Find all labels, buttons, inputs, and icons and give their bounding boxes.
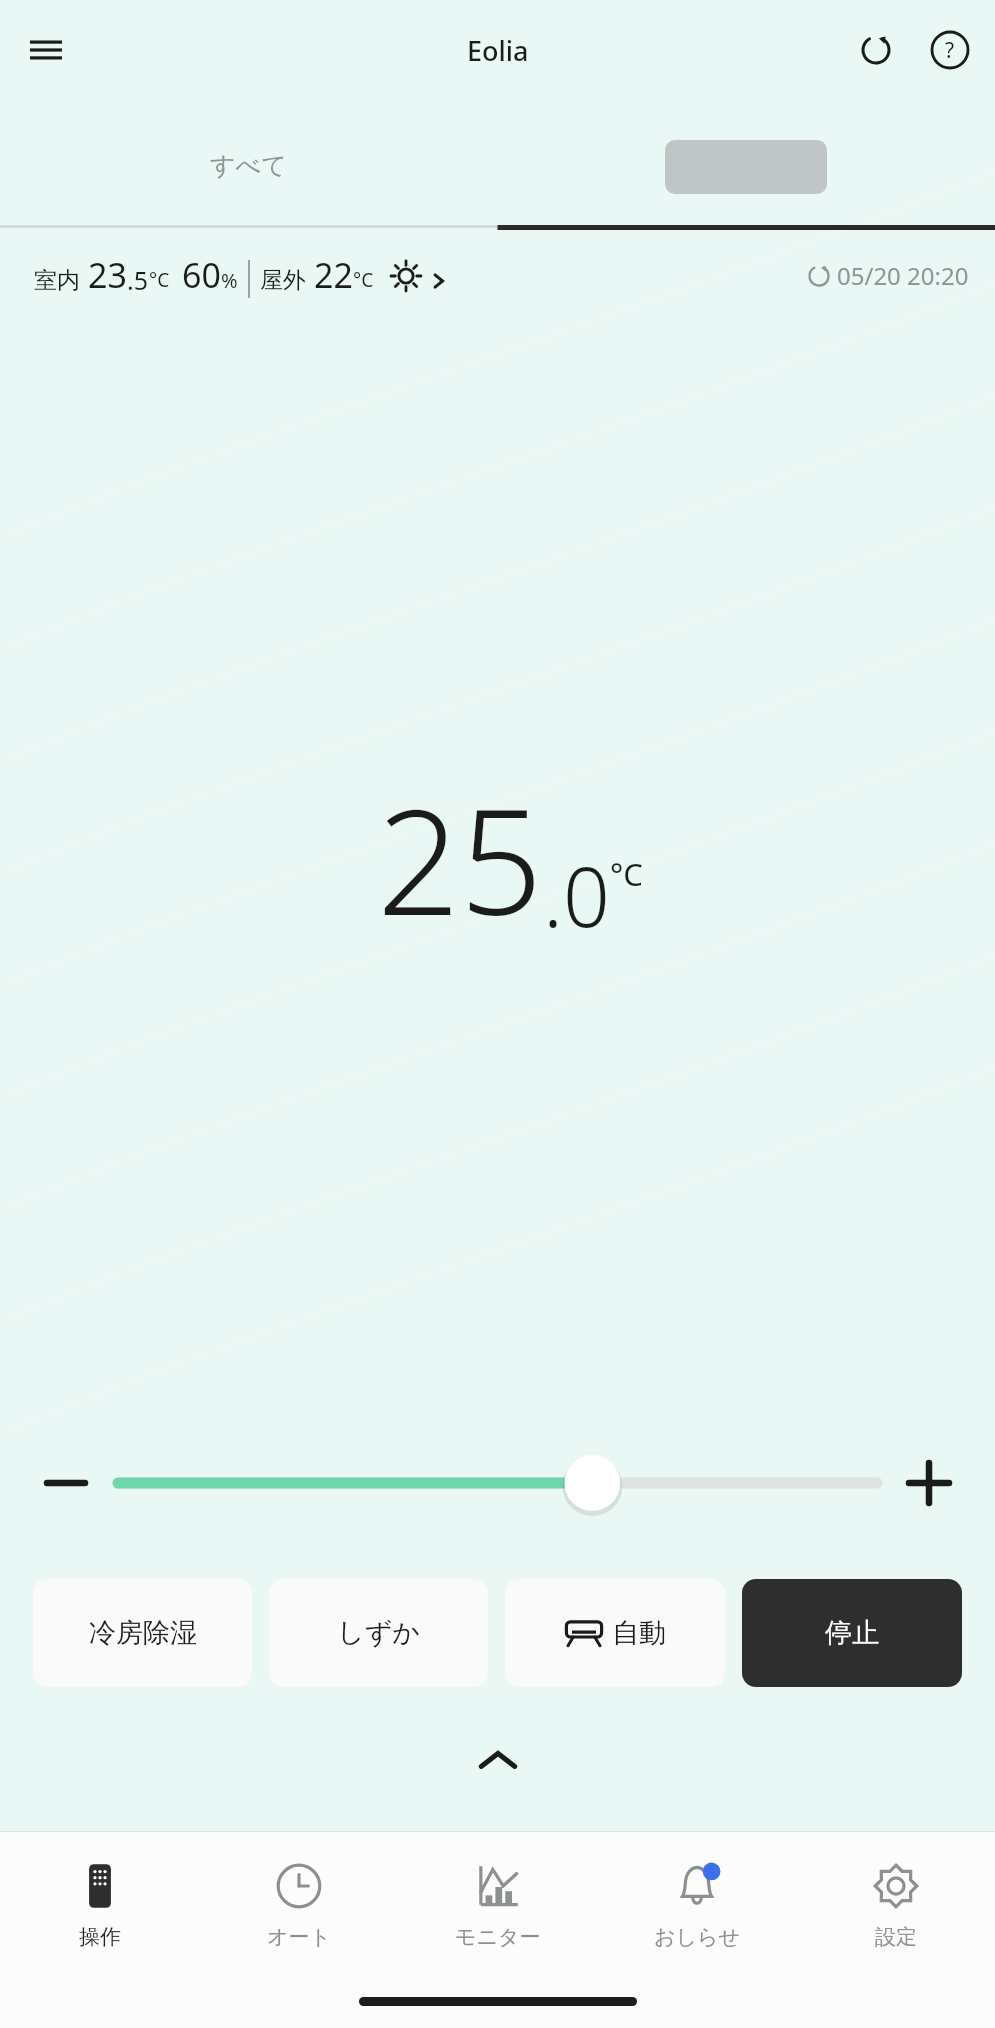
button[interactable]: モニター (398, 1832, 597, 1974)
staticText: °C (610, 853, 643, 895)
staticText: 冷房除湿 (89, 1616, 197, 1650)
staticText: 60 (182, 252, 221, 298)
staticText: おしらせ (654, 1924, 740, 1950)
staticText: 設定 (875, 1924, 917, 1950)
button[interactable]: Expand (463, 1731, 533, 1791)
button[interactable]: 冷房除湿 (33, 1579, 252, 1687)
button[interactable]: Decrease (36, 1453, 96, 1513)
button[interactable]: Increase (899, 1453, 959, 1513)
button[interactable] (497, 100, 995, 230)
staticText: モニター (455, 1924, 541, 1950)
staticText: % (221, 267, 238, 294)
button[interactable]: Menu (18, 22, 74, 78)
button[interactable]: 05/20 20:20 (807, 259, 969, 292)
staticText: 25 (377, 760, 543, 957)
staticText: .5 (127, 263, 149, 297)
staticText: オート (267, 1924, 331, 1950)
staticText: .0 (543, 839, 610, 951)
staticText: 22 (314, 252, 353, 298)
button[interactable]: おしらせ (597, 1832, 796, 1974)
button[interactable]: Refresh (847, 21, 905, 79)
staticText: 操作 (79, 1924, 121, 1950)
staticText: すべて (210, 150, 287, 181)
staticText: Eolia (467, 32, 529, 69)
staticText: °C (353, 267, 374, 293)
staticText: 屋外 (260, 266, 306, 295)
button[interactable]: すべて (0, 100, 497, 230)
button[interactable]: しずか (269, 1579, 488, 1687)
button[interactable]: 自動 (505, 1579, 725, 1687)
staticText: 室内 (34, 266, 80, 295)
staticText: 23 (88, 252, 127, 298)
button[interactable]: オート (199, 1832, 398, 1974)
button[interactable]: 停止 (742, 1579, 962, 1687)
button[interactable]: Help (921, 21, 979, 79)
button[interactable] (118, 1441, 877, 1525)
button[interactable]: 室内 (34, 252, 448, 298)
staticText: ? (945, 36, 955, 65)
staticText: 停止 (825, 1616, 879, 1650)
staticText: 自動 (612, 1616, 666, 1650)
staticText: 05/20 20:20 (837, 259, 969, 292)
staticText: °C (149, 267, 170, 293)
button[interactable]: 設定 (796, 1832, 995, 1974)
staticText: しずか (337, 1616, 420, 1650)
button[interactable]: 操作 (0, 1832, 199, 1974)
